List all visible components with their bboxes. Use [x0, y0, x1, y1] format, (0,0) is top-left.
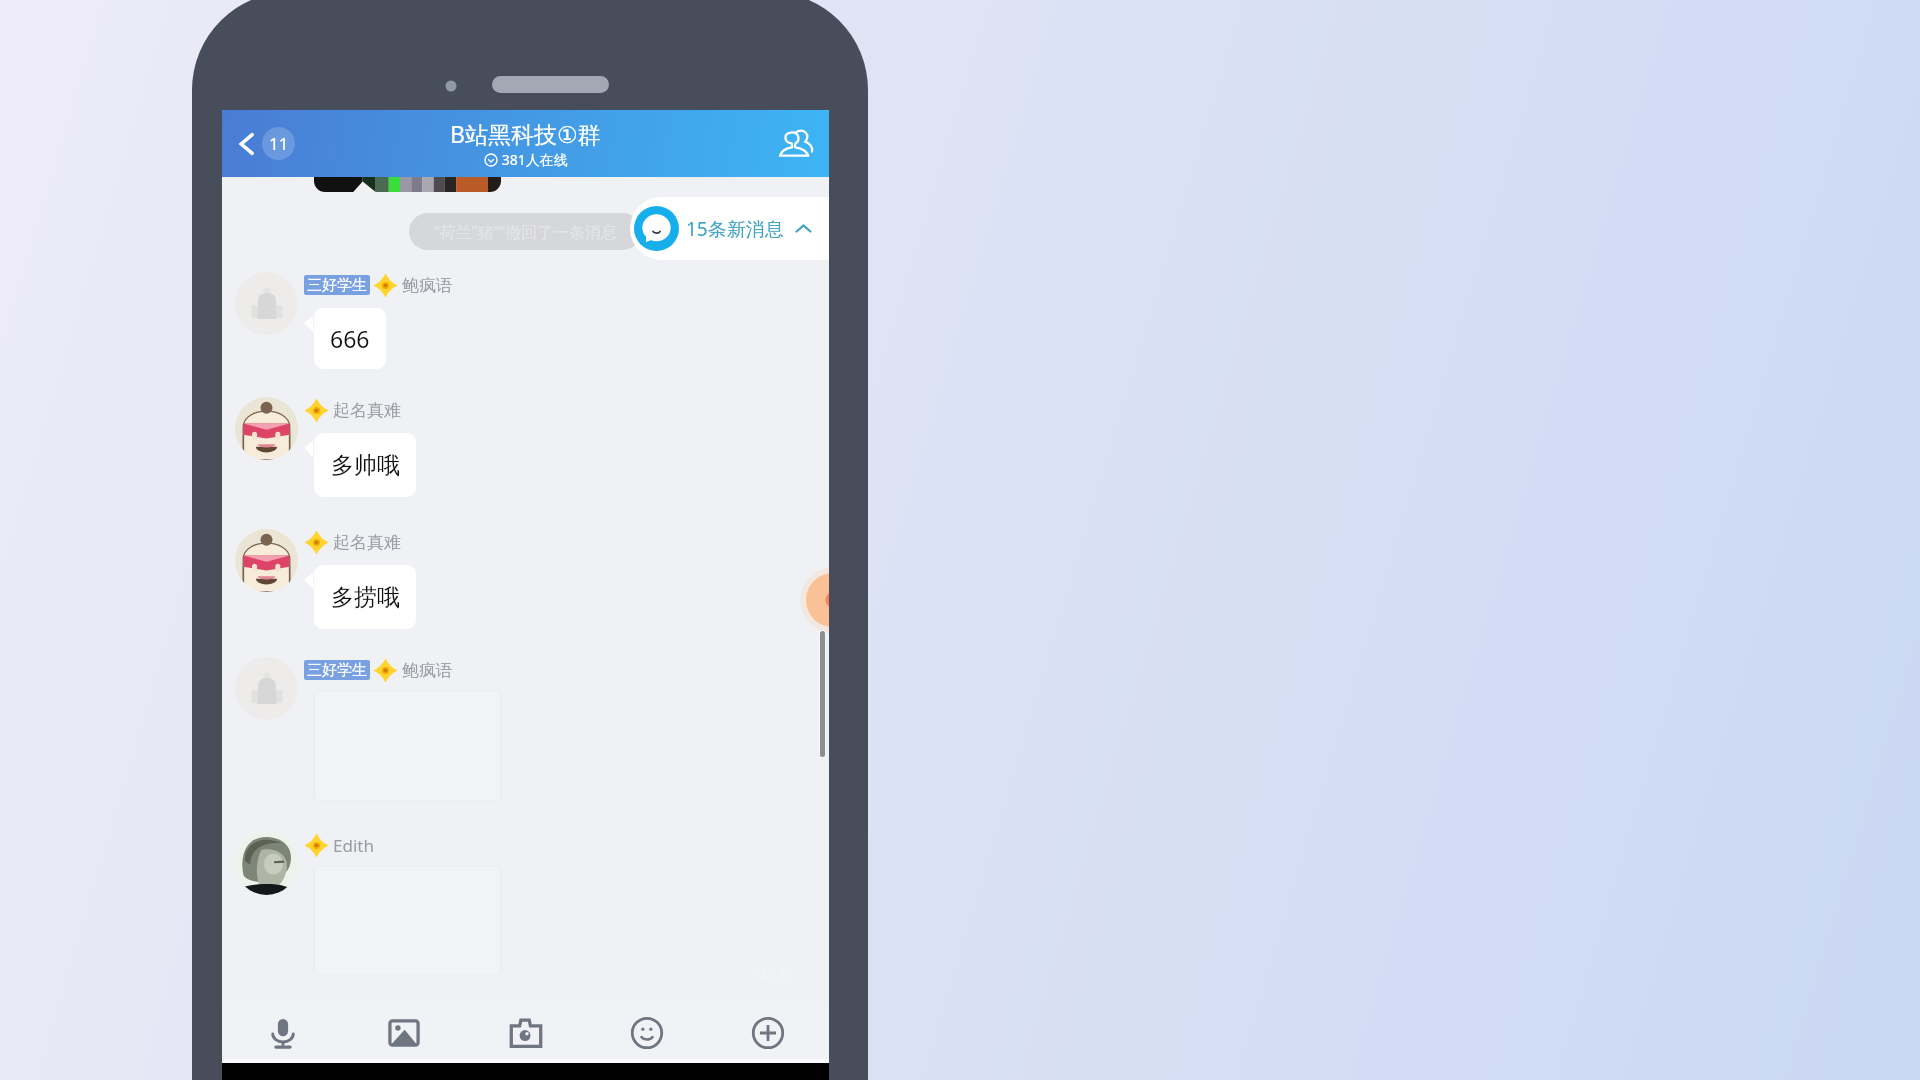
staticText: 11 — [269, 132, 289, 155]
staticText: 起名真难 — [333, 400, 401, 421]
staticText: 鲍疯语 — [402, 660, 453, 681]
staticText: 666 — [330, 323, 370, 354]
button[interactable]: Voice message — [257, 1007, 309, 1059]
button[interactable]: Group members — [773, 122, 817, 166]
staticText: 起名真难 — [333, 532, 401, 553]
staticText: ʺ荷兰ʺ猪ʺʺ撤回了一条消息 — [434, 221, 617, 243]
staticText: Edith — [333, 834, 374, 857]
button[interactable]: Avatar — [235, 272, 298, 335]
button[interactable]: Back — [230, 121, 299, 166]
button[interactable]: Avatar — [235, 657, 298, 720]
button[interactable]: Emoji — [621, 1007, 673, 1059]
button[interactable]: 15条新消息 — [630, 197, 829, 260]
staticText: 多捞哦 — [331, 583, 400, 612]
button[interactable]: 多捞哦 — [314, 565, 416, 629]
staticText: 三好学生 — [307, 661, 367, 680]
button[interactable]: 多帅哦 — [314, 433, 416, 497]
button[interactable]: Camera — [500, 1007, 552, 1059]
staticText: 381人在线 — [498, 150, 568, 169]
button[interactable]: Avatar — [235, 832, 298, 895]
staticText: 多帅哦 — [331, 451, 400, 480]
button[interactable]: More — [742, 1007, 794, 1059]
button[interactable]: Avatar — [235, 397, 298, 460]
button[interactable]: 666 — [314, 308, 386, 369]
staticText: 三好学生 — [307, 276, 367, 295]
staticText: 15条新消息 — [686, 216, 784, 242]
button[interactable]: Avatar — [235, 529, 298, 592]
staticText: B站黑科技①群 — [450, 118, 601, 149]
staticText: 鲍疯语 — [402, 275, 453, 296]
button[interactable]: Photos — [378, 1007, 430, 1059]
